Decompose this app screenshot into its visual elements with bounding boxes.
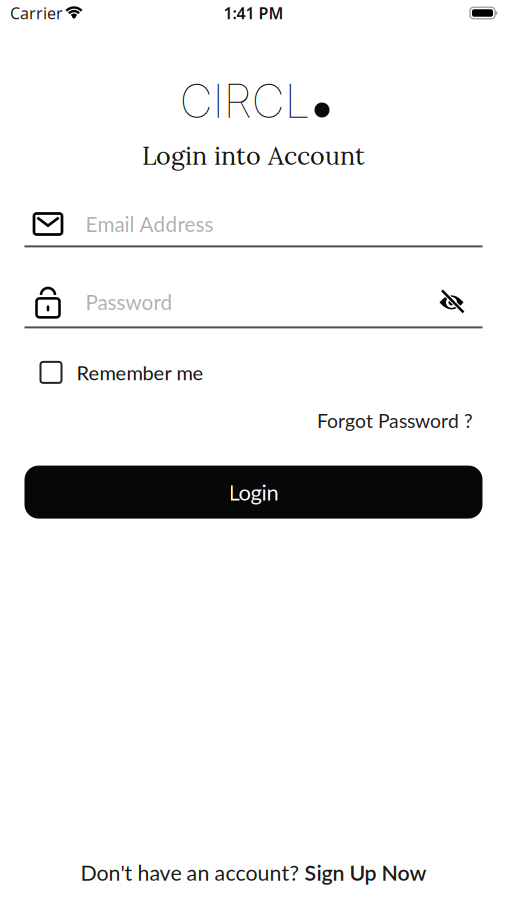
staticText: Login into Account <box>142 139 365 172</box>
staticText: Remember me <box>76 360 203 384</box>
button[interactable]: Email Address <box>24 212 482 247</box>
button[interactable] <box>437 289 463 315</box>
staticText: Don't have an account? Sign Up Now <box>80 860 426 885</box>
staticText: Email Address <box>85 212 213 236</box>
button[interactable]: Don't have an account? Sign Up Now <box>80 860 426 885</box>
staticText: Password <box>85 289 172 314</box>
button[interactable]: Password <box>24 286 482 328</box>
staticText: 1:41 PM <box>223 2 283 24</box>
staticText: Carrier <box>10 2 63 24</box>
staticText: CIRCL <box>179 73 310 129</box>
staticText: Forgot Password ? <box>317 409 473 432</box>
staticText: Login <box>228 479 278 505</box>
button[interactable]: Login <box>24 466 482 519</box>
button[interactable] <box>40 362 61 383</box>
button[interactable]: Forgot Password ? <box>317 409 473 432</box>
